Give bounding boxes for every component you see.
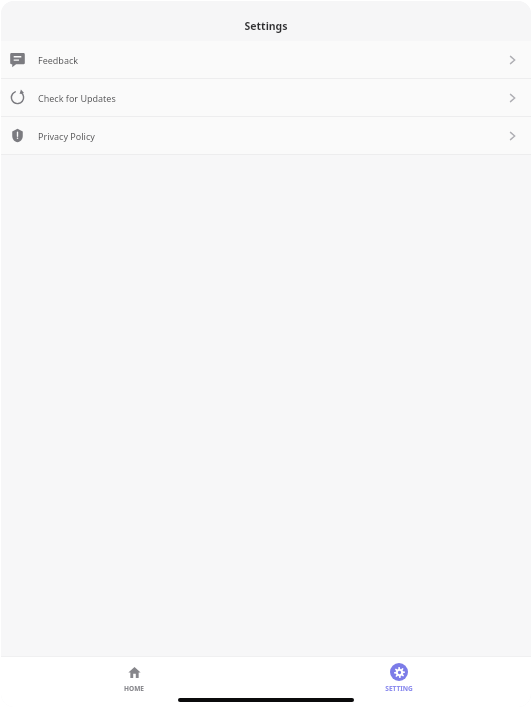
other: Settings tab <box>390 663 408 681</box>
staticText: Settings <box>1 19 531 33</box>
staticText: Feedback <box>38 54 79 66</box>
staticText: SETTING <box>385 684 413 693</box>
staticText: Privacy Policy <box>38 130 95 142</box>
button[interactable]: Privacy Policy <box>1 117 531 154</box>
button[interactable]: Feedback <box>1 41 531 78</box>
button[interactable]: Settings tab <box>371 656 427 697</box>
button[interactable]: Check for Updates <box>1 79 531 116</box>
other: Home tab <box>125 663 143 681</box>
staticText: Check for Updates <box>38 92 116 104</box>
button[interactable]: Home tab <box>110 656 158 697</box>
staticText: HOME <box>124 684 144 693</box>
